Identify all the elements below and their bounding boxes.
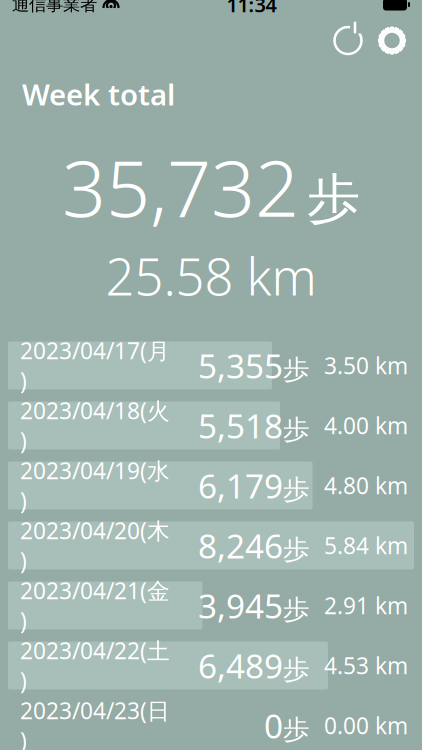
staticText: 2023/04/18(火) bbox=[20, 395, 170, 456]
staticText: 0.00 km bbox=[324, 710, 408, 740]
staticText: 6,179 bbox=[198, 463, 283, 508]
staticText: 5,355 bbox=[198, 343, 283, 388]
staticText: 2.91 km bbox=[324, 590, 408, 620]
staticText: Week total bbox=[22, 74, 175, 113]
staticText: 25.58 km bbox=[105, 242, 316, 309]
staticText: 2023/04/19(水) bbox=[20, 455, 170, 516]
staticText: 4.53 km bbox=[324, 650, 408, 680]
staticText: 8,246 bbox=[198, 523, 283, 568]
staticText: 2023/04/17(月) bbox=[20, 335, 170, 396]
staticText: 5.84 km bbox=[324, 530, 408, 560]
staticText: 歩 bbox=[283, 473, 310, 506]
button[interactable]: Refresh bbox=[326, 18, 370, 62]
staticText: 6,489 bbox=[198, 643, 283, 688]
staticText: 2023/04/22(土) bbox=[20, 635, 170, 696]
staticText: 2023/04/20(木) bbox=[20, 515, 170, 576]
staticText: 歩 bbox=[283, 533, 310, 566]
staticText: 通信事業者 bbox=[12, 0, 97, 15]
staticText: 2023/04/23(日) bbox=[20, 695, 170, 750]
staticText: 歩 bbox=[283, 353, 310, 386]
staticText: 0 bbox=[264, 703, 283, 748]
button[interactable]: Settings bbox=[370, 18, 414, 62]
staticText: 歩 bbox=[283, 593, 310, 626]
staticText: 3.50 km bbox=[324, 350, 408, 380]
staticText: 歩 bbox=[283, 713, 310, 746]
staticText: 35,732 bbox=[62, 135, 299, 238]
staticText: 3,945 bbox=[198, 583, 283, 628]
staticText: 11:34 bbox=[226, 0, 276, 18]
staticText: 2023/04/21(金) bbox=[20, 575, 170, 636]
staticText: 歩 bbox=[283, 653, 310, 686]
staticText: 5,518 bbox=[198, 403, 283, 448]
staticText: 歩 bbox=[307, 166, 360, 232]
staticText: 4.00 km bbox=[324, 410, 408, 440]
staticText: 4.80 km bbox=[324, 470, 408, 500]
staticText: 歩 bbox=[283, 413, 310, 446]
